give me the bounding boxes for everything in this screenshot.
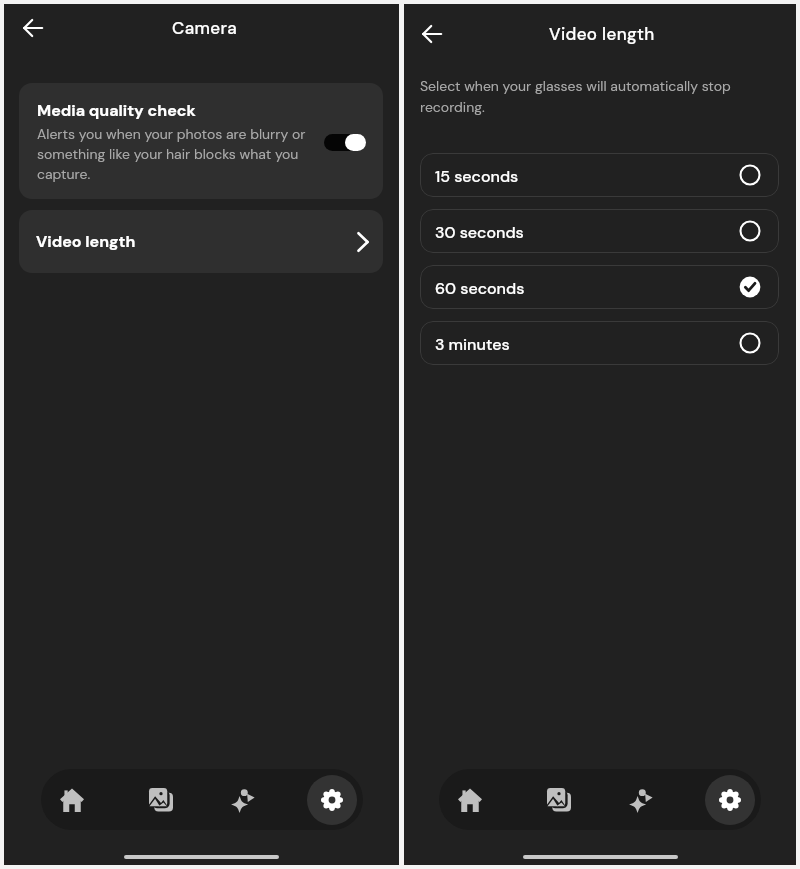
button[interactable]: Video length [19, 210, 383, 273]
button[interactable]: Effects [220, 775, 270, 825]
button[interactable]: Back [416, 18, 448, 50]
staticText: 3 minutes [435, 334, 510, 355]
button[interactable]: Settings [307, 775, 357, 825]
staticText: Video length [36, 231, 136, 252]
button[interactable]: Back [17, 12, 49, 44]
staticText: 60 seconds [435, 278, 525, 299]
button[interactable]: 15 seconds [420, 153, 779, 197]
button[interactable]: Media quality check [19, 83, 383, 199]
staticText: Video length [549, 23, 655, 45]
button[interactable]: Effects [618, 775, 668, 825]
staticText: 30 seconds [435, 222, 524, 243]
button[interactable]: 3 minutes [420, 321, 779, 365]
staticText: Media quality check [37, 100, 196, 121]
staticText: 15 seconds [435, 166, 519, 187]
button[interactable]: Home [47, 775, 97, 825]
button[interactable]: Gallery [532, 775, 582, 825]
button[interactable]: Settings [705, 775, 755, 825]
button[interactable]: Toggle media quality check [324, 134, 364, 151]
staticText: Alerts you when your photos are blurry o… [37, 125, 309, 183]
button[interactable]: Home [445, 775, 495, 825]
button[interactable]: Gallery [134, 775, 184, 825]
button[interactable]: 60 seconds [420, 265, 779, 309]
staticText: Camera [172, 17, 238, 39]
staticText: Select when your glasses will automatica… [420, 77, 736, 116]
button[interactable]: 30 seconds [420, 209, 779, 253]
